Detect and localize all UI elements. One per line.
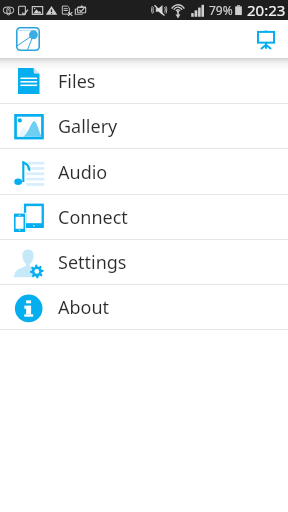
staticText: Gallery (58, 114, 118, 139)
button[interactable]: Settings (0, 240, 288, 285)
button[interactable]: Connect (0, 195, 288, 240)
button[interactable]: App logo (12, 23, 44, 55)
staticText: 20:23 (247, 0, 286, 20)
staticText: Connect (58, 205, 128, 230)
staticText: Audio (58, 160, 108, 185)
button[interactable]: About (0, 285, 288, 330)
button[interactable]: Gallery (0, 104, 288, 149)
button[interactable]: Audio (0, 149, 288, 195)
button[interactable]: Cast screen (250, 23, 282, 55)
button[interactable]: Files (0, 58, 288, 104)
staticText: Files (58, 69, 96, 94)
staticText: Settings (58, 250, 127, 275)
staticText: 79% (209, 2, 233, 18)
staticText: About (58, 295, 110, 320)
